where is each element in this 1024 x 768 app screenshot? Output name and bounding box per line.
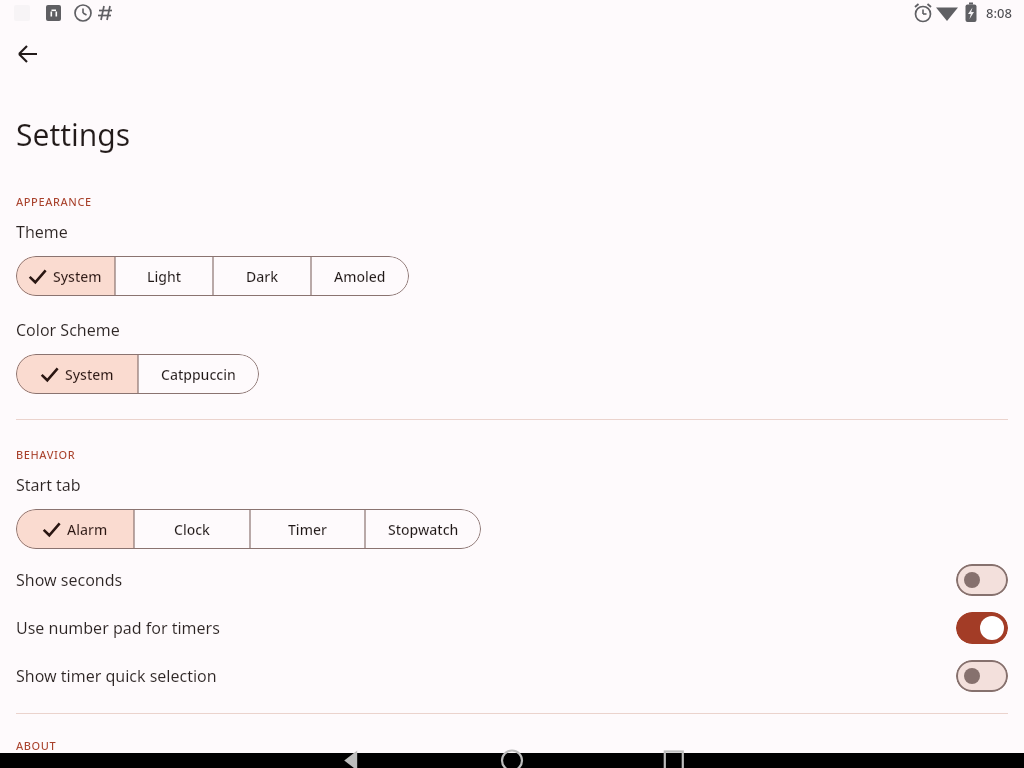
staticText: System xyxy=(65,365,114,384)
staticText: Light xyxy=(147,267,182,286)
staticText: Use number pad for timers xyxy=(16,617,956,639)
button[interactable]: Show timer quick selection xyxy=(0,652,1024,700)
button[interactable]: Light xyxy=(115,256,213,296)
button[interactable]: Amoled xyxy=(311,256,409,296)
button[interactable]: Back xyxy=(8,34,48,74)
staticText: Theme xyxy=(16,221,68,243)
staticText: Alarm xyxy=(67,520,108,539)
staticText: ABOUT xyxy=(16,738,57,753)
button[interactable]: Timer xyxy=(250,509,365,549)
staticText: 8:08 xyxy=(986,4,1012,22)
staticText: BEHAVIOR xyxy=(16,447,76,462)
button[interactable]: Stopwatch xyxy=(365,509,481,549)
staticText: Show timer quick selection xyxy=(16,665,956,687)
button[interactable]: System xyxy=(16,354,138,394)
staticText: Dark xyxy=(246,267,278,286)
button[interactable]: System xyxy=(16,256,115,296)
staticText: Show seconds xyxy=(16,569,956,591)
button[interactable]: Use number pad for timers xyxy=(0,604,1024,652)
button[interactable]: Show seconds xyxy=(956,564,1008,596)
staticText: System xyxy=(53,267,102,286)
staticText: Color Scheme xyxy=(16,319,120,341)
staticText: Stopwatch xyxy=(388,520,459,539)
staticText: Start tab xyxy=(16,474,81,496)
button[interactable]: Show timer quick selection xyxy=(956,660,1008,692)
staticText: APPEARANCE xyxy=(16,194,92,209)
staticText: Clock xyxy=(174,520,210,539)
staticText: Settings xyxy=(16,114,131,155)
button[interactable]: Alarm xyxy=(16,509,134,549)
staticText: Timer xyxy=(288,520,327,539)
button[interactable]: Show seconds xyxy=(0,556,1024,604)
staticText: Catppuccin xyxy=(161,365,236,384)
staticText: Amoled xyxy=(334,267,386,286)
button[interactable]: Dark xyxy=(213,256,311,296)
button[interactable]: Use number pad for timers xyxy=(956,612,1008,644)
button[interactable]: Catppuccin xyxy=(138,354,259,394)
button[interactable]: Clock xyxy=(134,509,250,549)
